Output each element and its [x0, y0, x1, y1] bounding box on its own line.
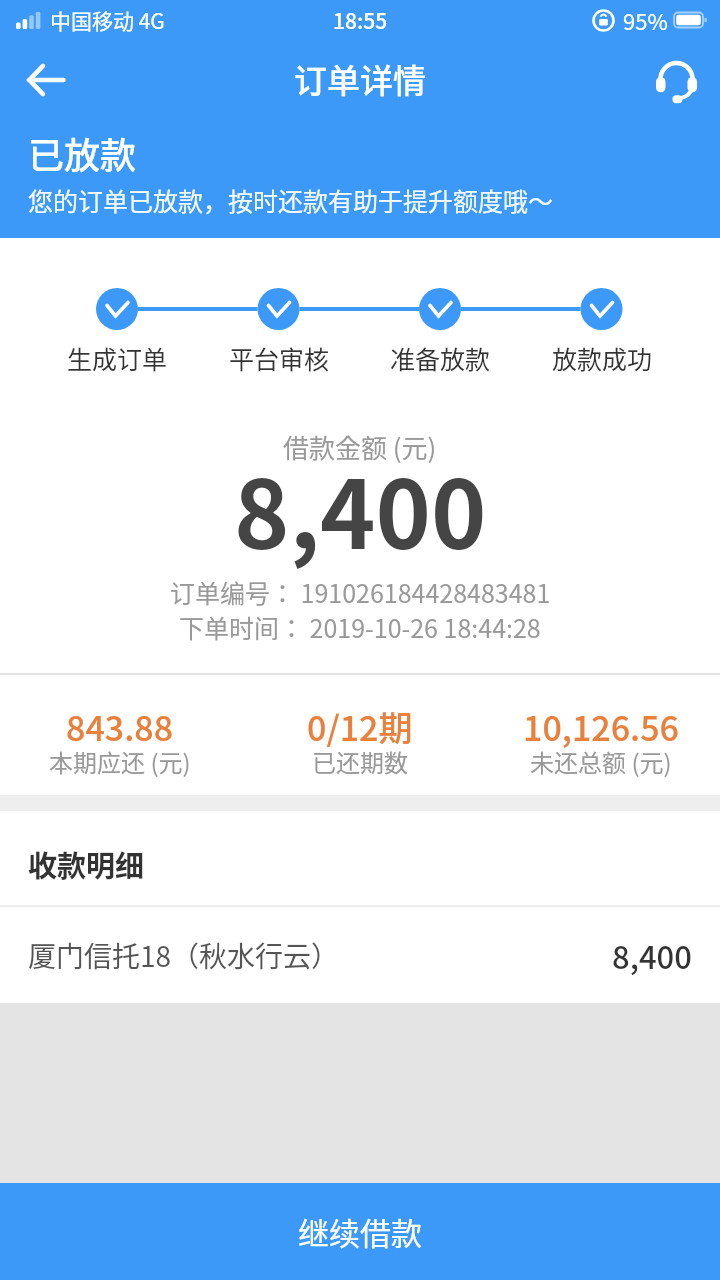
button[interactable]: 继续借款: [0, 1183, 720, 1280]
button[interactable]: [22, 56, 70, 104]
staticText: 您的订单已放款，按时还款有助于提升额度哦～: [28, 182, 554, 218]
staticText: 8,400: [234, 440, 487, 576]
staticText: 准备放款: [390, 340, 491, 376]
staticText: 18:55: [333, 5, 388, 35]
staticText: 10,126.56: [523, 702, 679, 751]
staticText: 8,400: [612, 933, 692, 978]
staticText: 下单时间： 2019-10-26 18:44:28: [179, 609, 541, 645]
button[interactable]: [652, 56, 700, 104]
staticText: 订单详情: [294, 55, 426, 103]
button[interactable]: 厦门信托18（秋水行云）: [0, 907, 720, 1003]
staticText: 生成订单: [67, 340, 168, 376]
staticText: 本期应还 (元): [49, 744, 191, 779]
staticText: 放款成功: [552, 340, 653, 376]
staticText: 平台审核: [229, 340, 330, 376]
staticText: 95%: [623, 4, 668, 36]
staticText: 借款金额 (元): [283, 428, 437, 466]
staticText: 中国移动 4G: [50, 5, 165, 35]
staticText: 未还总额 (元): [530, 744, 672, 779]
staticText: 订单编号： 191026184428483481: [170, 574, 551, 610]
staticText: 厦门信托18（秋水行云）: [28, 935, 340, 976]
staticText: 0/12期: [307, 702, 413, 751]
staticText: 843.88: [66, 702, 174, 751]
staticText: 已放款: [28, 127, 137, 179]
staticText: 已还期数: [312, 744, 408, 779]
staticText: 继续借款: [298, 1209, 422, 1254]
staticText: 收款明细: [28, 843, 145, 885]
